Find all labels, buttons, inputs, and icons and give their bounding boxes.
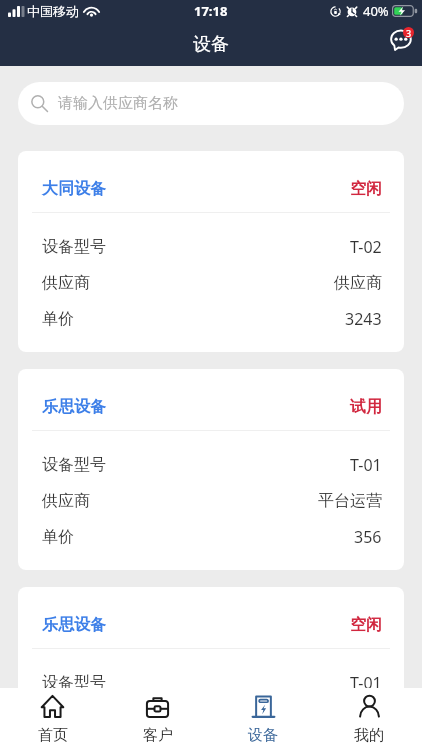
staticText: 40% <box>363 2 389 20</box>
staticText: T-01 <box>350 672 382 694</box>
staticText: 我的 <box>354 726 384 745</box>
button[interactable]: 大同设备 <box>18 151 404 352</box>
staticText: 设备型号 <box>42 455 106 475</box>
staticText: 请输入供应商名称 <box>58 94 178 113</box>
button[interactable]: 我的 <box>316 688 422 750</box>
staticText: 供应商 <box>42 709 90 729</box>
staticText: 设备型号 <box>42 237 106 257</box>
staticText: 平台运营 <box>318 491 382 511</box>
button[interactable]: 乐思设备 <box>18 587 404 750</box>
staticText: 3243 <box>345 308 382 330</box>
staticText: 17:18 <box>194 2 228 20</box>
staticText: 中国移动 <box>27 3 79 19</box>
staticText: T-02 <box>350 236 382 258</box>
button[interactable]: 首页 <box>0 688 105 750</box>
staticText: 试用 <box>350 397 382 417</box>
staticText: 单价 <box>42 309 74 329</box>
staticText: 客户 <box>143 726 173 745</box>
staticText: 356 <box>354 526 382 548</box>
staticText: 乐思设备 <box>42 397 106 417</box>
staticText: 大同设备 <box>42 179 106 199</box>
staticText: 单价 <box>42 527 74 547</box>
staticText: T-01 <box>350 454 382 476</box>
button[interactable]: 乐思设备 <box>18 369 404 570</box>
staticText: 平台运营 <box>318 709 382 729</box>
button[interactable]: 设备 <box>210 688 316 750</box>
button[interactable]: 请输入供应商名称 <box>18 82 404 125</box>
staticText: 供应商 <box>334 273 382 293</box>
button[interactable]: Messages <box>386 23 418 55</box>
staticText: 供应商 <box>42 273 90 293</box>
staticText: 设备 <box>248 726 278 745</box>
staticText: 3 <box>406 27 412 38</box>
staticText: 设备型号 <box>42 673 106 693</box>
staticText: 乐思设备 <box>42 615 106 635</box>
staticText: 首页 <box>38 726 68 745</box>
staticText: 空闲 <box>350 615 382 635</box>
staticText: 设备 <box>193 33 229 56</box>
staticText: 356 <box>354 737 382 750</box>
button[interactable]: 客户 <box>105 688 210 750</box>
staticText: 空闲 <box>350 179 382 199</box>
staticText: 供应商 <box>42 491 90 511</box>
staticText: 单价 <box>42 737 74 750</box>
